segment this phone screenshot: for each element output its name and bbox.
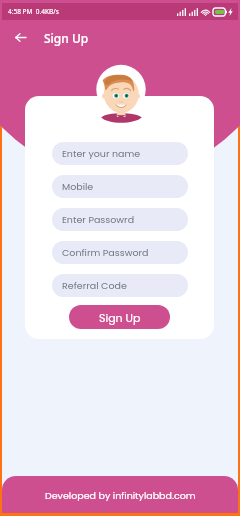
button[interactable]: Mobile: [52, 175, 188, 198]
staticText: Sign Up: [44, 30, 89, 46]
button[interactable]: Referral Code: [52, 274, 188, 297]
staticText: Enter your name: [62, 147, 141, 160]
staticText: Mobile: [62, 180, 94, 193]
staticText: Enter Passowrd: [62, 213, 135, 226]
staticText: 4:58 PM 0.4KB/s: [8, 7, 59, 16]
staticText: Developed by infinitylabbd.com: [45, 489, 196, 502]
button[interactable]: Developed by infinitylabbd.com: [2, 476, 238, 513]
button[interactable]: Sign Up: [69, 305, 170, 329]
button[interactable]: Back: [8, 25, 33, 50]
staticText: Sign Up: [99, 310, 141, 325]
button[interactable]: Confirm Password: [52, 241, 188, 264]
button[interactable]: Enter Passowrd: [52, 208, 188, 231]
button[interactable]: Enter your name: [52, 142, 188, 165]
staticText: Referral Code: [62, 279, 127, 292]
staticText: Confirm Password: [62, 246, 149, 259]
